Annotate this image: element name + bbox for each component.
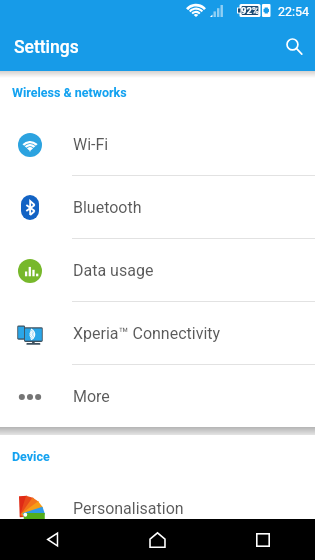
button[interactable]: Data usage (0, 239, 315, 302)
staticText: 22:54 (278, 4, 310, 19)
staticText: More (73, 387, 110, 406)
button[interactable]: Wi-Fi (0, 113, 315, 176)
staticText: Device (12, 449, 50, 464)
staticText: Wi-Fi (73, 135, 109, 154)
staticText: Personalisation (73, 499, 184, 518)
staticText: Settings (14, 37, 79, 58)
button[interactable]: More (0, 365, 315, 428)
staticText: Data usage (73, 261, 154, 280)
staticText: 92% (241, 5, 259, 16)
staticText: Bluetooth (73, 198, 142, 217)
button[interactable]: Xperia™ Connectivity (0, 302, 315, 365)
button[interactable]: Back (0, 519, 105, 560)
button[interactable]: Personalisation (0, 477, 315, 540)
button[interactable]: Bluetooth (0, 176, 315, 239)
staticText: Xperia™ Connectivity (73, 324, 221, 343)
button[interactable]: Home (105, 519, 210, 560)
button[interactable]: Search (274, 26, 314, 66)
button[interactable]: Recent apps (210, 519, 315, 560)
staticText: Wireless & networks (12, 85, 127, 100)
